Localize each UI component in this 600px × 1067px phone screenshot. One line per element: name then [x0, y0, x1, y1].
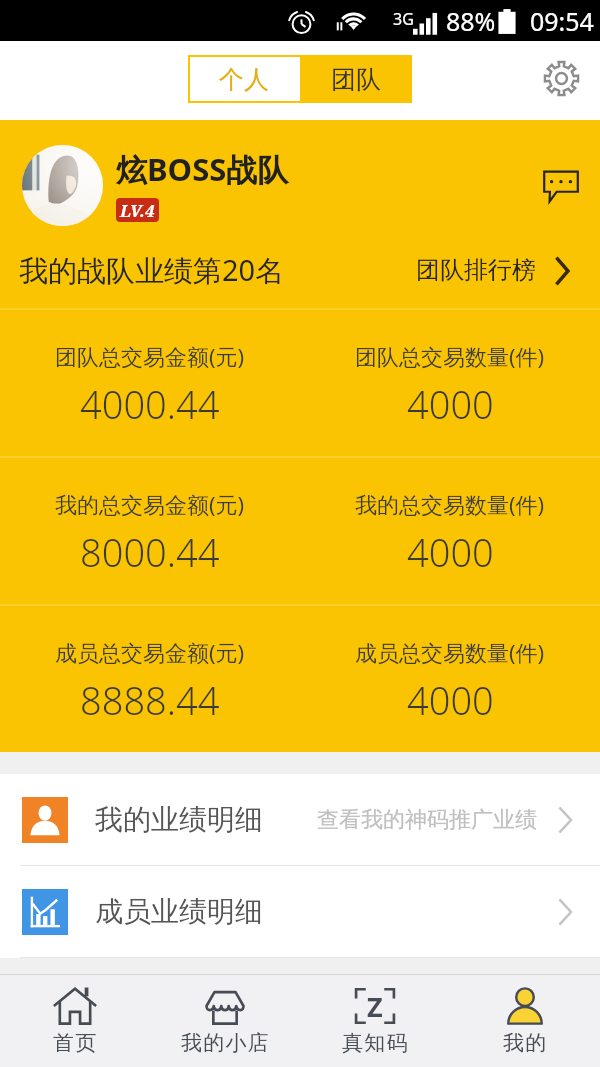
staticText: 8000.44 [80, 526, 220, 578]
button[interactable]: 我的小店 [150, 975, 300, 1067]
staticText: Z [367, 988, 383, 1025]
button[interactable]: Messages [535, 160, 587, 212]
button[interactable]: 首页 [0, 975, 150, 1067]
staticText: 首页 [53, 1030, 98, 1056]
button[interactable]: 团队 [300, 55, 412, 103]
staticText: 4000 [407, 674, 494, 726]
staticText: LV.4 [120, 199, 155, 222]
staticText: 3G [393, 8, 414, 30]
staticText: 88% [446, 4, 496, 38]
staticText: 炫BOSS战队 [116, 148, 289, 190]
staticText: 团队总交易数量(件) [355, 341, 545, 371]
staticText: 团队总交易金额(元) [55, 341, 245, 371]
staticText: 我的战队业绩第20名 [19, 250, 285, 290]
staticText: 我的小店 [181, 1030, 270, 1056]
staticText: 我的总交易数量(件) [355, 489, 545, 519]
staticText: 个人 [219, 64, 269, 95]
button[interactable]: 我的 [450, 975, 600, 1067]
staticText: 我的总交易金额(元) [55, 489, 245, 519]
button[interactable]: Z [300, 975, 450, 1067]
staticText: 8888.44 [80, 674, 220, 726]
button[interactable]: 我的战队业绩第20名 [0, 243, 600, 308]
staticText: 成员业绩明细 [95, 894, 263, 929]
staticText: 团队排行榜 [416, 255, 536, 285]
staticText: 我的业绩明细 [95, 802, 263, 837]
staticText: 真知码 [342, 1030, 409, 1056]
staticText: 团队 [331, 64, 381, 95]
button[interactable]: 成员业绩明细 [0, 866, 600, 957]
staticText: 成员总交易金额(元) [55, 637, 245, 667]
staticText: 09:54 [530, 4, 594, 38]
button[interactable]: Settings [537, 54, 585, 102]
staticText: 4000.44 [80, 378, 220, 430]
button[interactable]: 个人 [188, 55, 300, 103]
staticText: 4000 [407, 378, 494, 430]
button[interactable]: 我的业绩明细 [0, 774, 600, 865]
staticText: 我的 [503, 1030, 548, 1056]
staticText: 4000 [407, 526, 494, 578]
staticText: 查看我的神码推广业绩 [317, 806, 537, 834]
staticText: 成员总交易数量(件) [355, 637, 545, 667]
